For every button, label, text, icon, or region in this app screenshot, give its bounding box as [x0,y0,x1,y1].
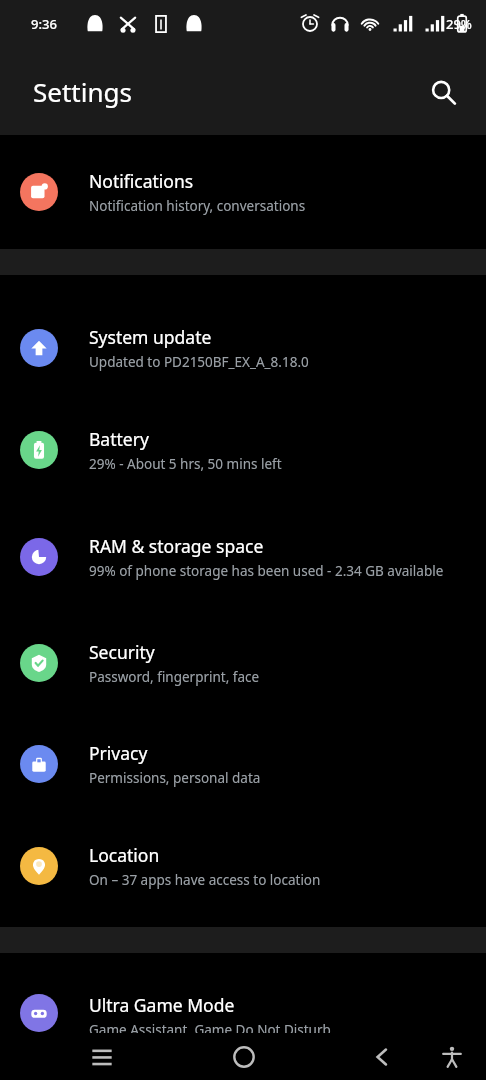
button[interactable]: Privacy [0,713,486,815]
staticText: Settings [33,74,132,109]
staticText: 99% of phone storage has been used - 2.3… [89,562,444,580]
button[interactable]: Home [220,1033,268,1080]
staticText: 29% - About 5 hrs, 50 mins left [89,455,282,473]
staticText: Game Assistant, Game Do Not Disturb [89,1021,331,1033]
button[interactable]: Search settings [420,69,466,115]
button[interactable]: Ultra Game Mode [0,953,486,1033]
button[interactable]: Location [0,815,486,917]
button[interactable]: Accessibility [430,1035,474,1079]
button[interactable]: System update [0,297,486,399]
staticText: Updated to PD2150BF_EX_A_8.18.0 [89,353,309,371]
staticText: Permissions, personal data [89,769,261,787]
button[interactable]: Recent apps [78,1033,126,1080]
staticText: Battery [89,427,149,451]
staticText: Privacy [89,741,148,765]
staticText: System update [89,325,212,349]
staticText: 9:36 [31,15,57,33]
staticText: Password, fingerprint, face [89,668,260,686]
staticText: 29% [446,15,472,33]
staticText: On – 37 apps have access to location [89,871,321,889]
button[interactable]: RAM & storage space [0,501,486,613]
button[interactable]: Notifications [0,135,486,249]
button[interactable]: Battery [0,399,486,501]
staticText: Location [89,843,160,867]
staticText: Notification history, conversations [89,197,306,215]
staticText: RAM & storage space [89,534,264,558]
staticText: Security [89,640,155,664]
staticText: Ultra Game Mode [89,993,235,1017]
button[interactable]: Back [358,1033,406,1080]
staticText: Notifications [89,169,194,193]
button[interactable]: Security [0,613,486,713]
